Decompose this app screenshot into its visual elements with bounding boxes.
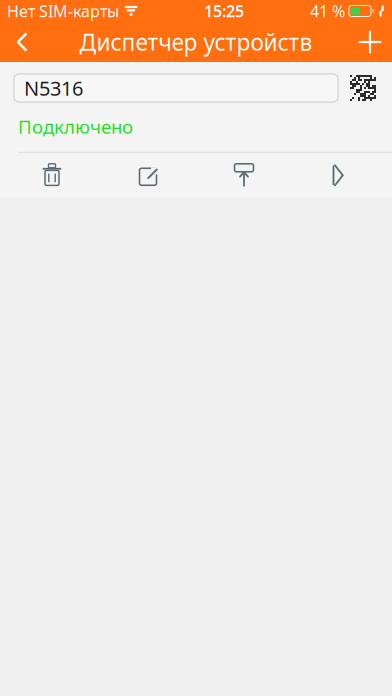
staticText: Подключено (18, 114, 133, 139)
button[interactable]: Загрузить (196, 153, 292, 198)
button[interactable]: QR-код (348, 73, 378, 103)
staticText: 41 % (310, 0, 345, 22)
staticText: Нет SIM-карты (7, 0, 119, 22)
staticText: Диспетчер устройств (79, 27, 312, 57)
staticText: N5316 (24, 75, 83, 101)
button[interactable]: Редактировать (100, 153, 196, 198)
button[interactable]: Назад (0, 22, 44, 62)
button[interactable]: Удалить (4, 153, 100, 198)
staticText: 15:25 (204, 0, 244, 22)
button[interactable]: Добавить (348, 22, 392, 62)
button[interactable]: Запустить (292, 153, 388, 198)
